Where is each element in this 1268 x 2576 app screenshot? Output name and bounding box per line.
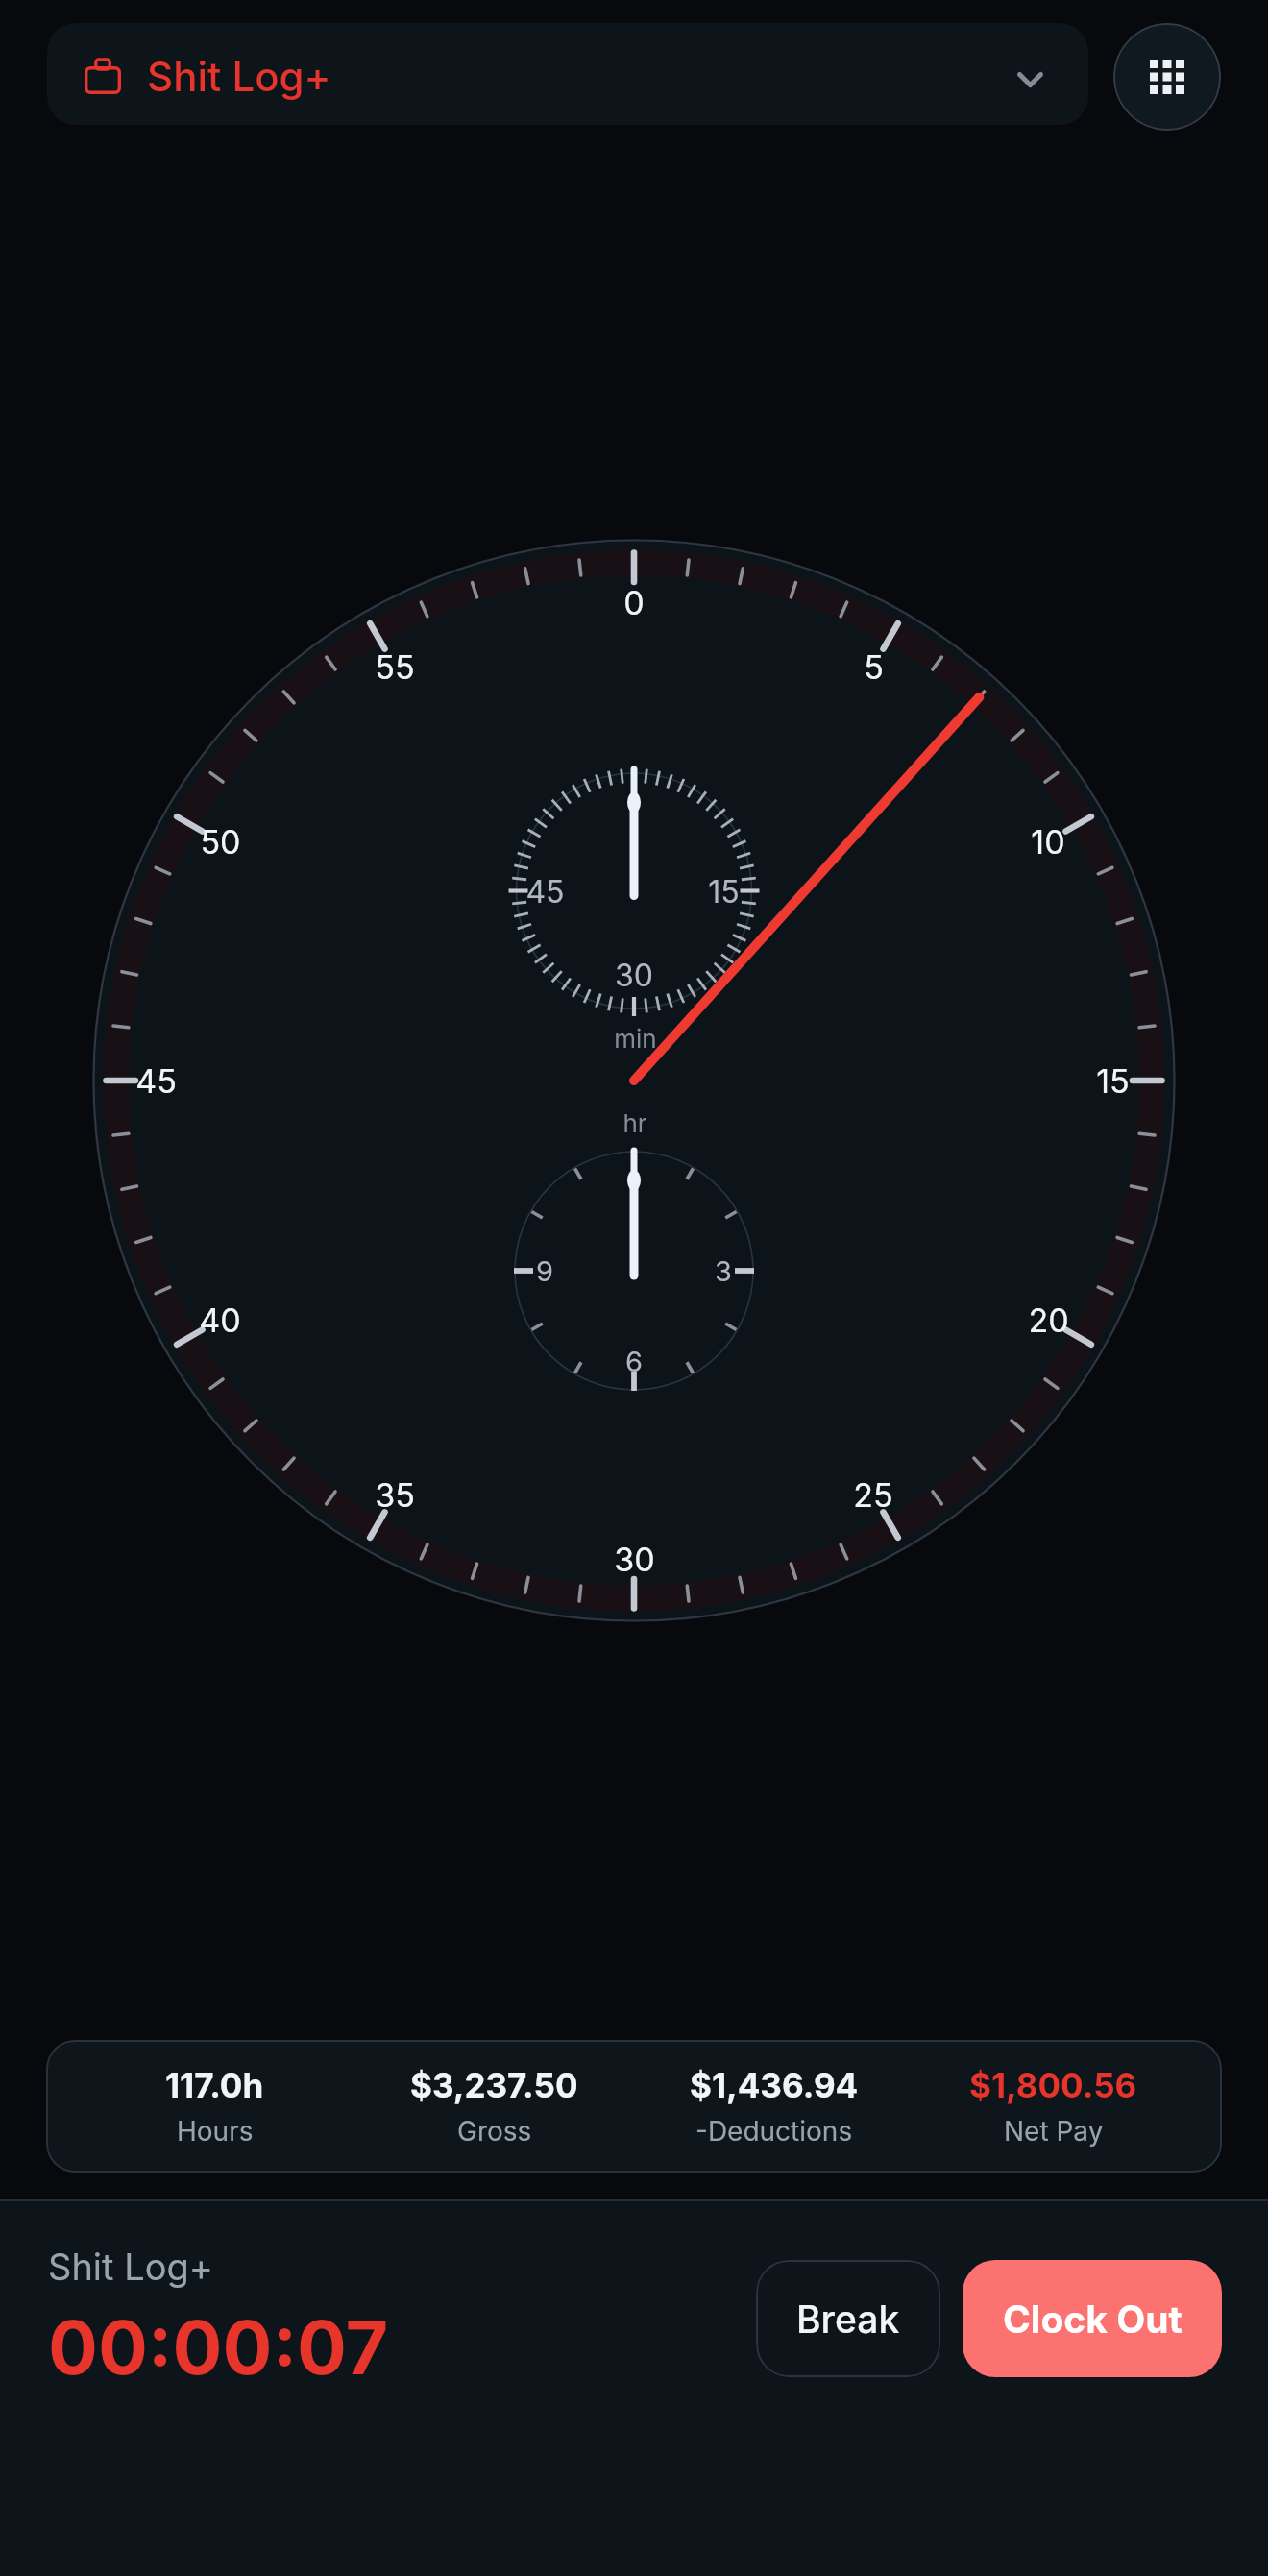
staticText: 30 xyxy=(614,1540,655,1579)
staticText: Net Pay xyxy=(1004,2115,1104,2148)
staticText: 15 xyxy=(1096,1061,1130,1101)
staticText: 40 xyxy=(199,1300,241,1340)
staticText: Shit Log+ xyxy=(147,52,331,101)
staticText: 117.0h xyxy=(165,2065,264,2105)
staticText: $1,436.94 xyxy=(690,2065,859,2105)
staticText: 9 xyxy=(536,1254,553,1288)
staticText: 35 xyxy=(375,1475,415,1515)
button[interactable]: 117.0h xyxy=(46,2040,1222,2173)
staticText: 30 xyxy=(615,957,653,994)
staticText: 6 xyxy=(625,1345,643,1378)
staticText: 10 xyxy=(1031,822,1065,862)
staticText: Break xyxy=(796,2297,900,2342)
staticText: 3 xyxy=(715,1254,732,1288)
staticText: 25 xyxy=(853,1475,893,1515)
staticText: Clock Out xyxy=(1003,2297,1183,2342)
button[interactable]: Clock Out xyxy=(963,2260,1222,2377)
staticText: -Deductions xyxy=(695,2115,853,2148)
staticText: 20 xyxy=(1028,1300,1069,1340)
staticText: 45 xyxy=(525,873,565,911)
button[interactable]: Apps xyxy=(1113,23,1221,131)
staticText: 5 xyxy=(864,647,884,687)
staticText: Hours xyxy=(177,2115,254,2148)
staticText: Gross xyxy=(457,2115,532,2148)
staticText: Shit Log+ xyxy=(48,2245,213,2289)
staticText: $1,800.56 xyxy=(969,2065,1137,2105)
staticText: 00:00:07 xyxy=(48,2302,389,2392)
staticText: 45 xyxy=(135,1061,177,1101)
button[interactable]: Shit Log+ xyxy=(47,23,1088,125)
staticText: min xyxy=(614,1024,657,1054)
button[interactable]: Break xyxy=(756,2260,940,2377)
staticText: $3,237.50 xyxy=(410,2065,578,2105)
staticText: 50 xyxy=(200,822,241,862)
staticText: 15 xyxy=(708,873,740,911)
staticText: 55 xyxy=(375,647,415,687)
staticText: hr xyxy=(622,1108,647,1138)
staticText: 0 xyxy=(623,583,645,622)
